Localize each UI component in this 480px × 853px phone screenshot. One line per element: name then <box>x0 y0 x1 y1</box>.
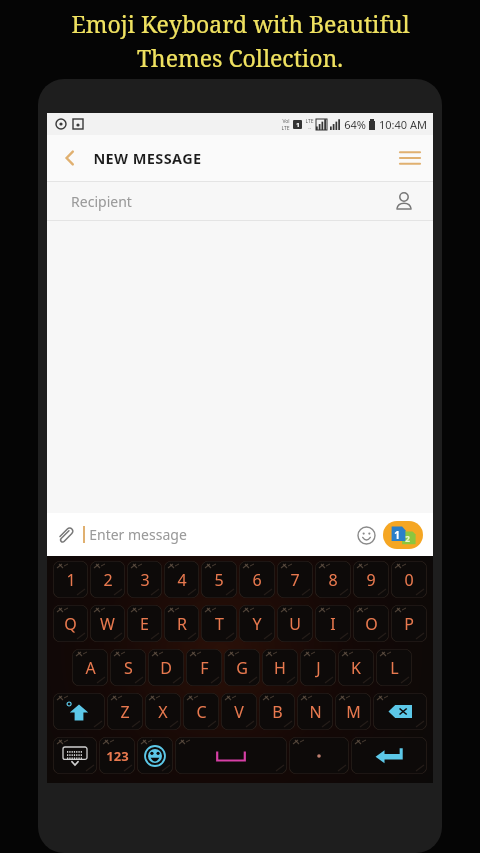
staticText: 2 <box>405 533 410 544</box>
button[interactable]: Period <box>289 737 349 774</box>
button[interactable]: N <box>297 693 333 730</box>
staticText: ·· <box>308 125 311 132</box>
staticText: Enter message <box>89 525 187 544</box>
staticText: I <box>330 613 336 635</box>
button[interactable]: 2 <box>90 561 125 598</box>
staticText: A <box>85 657 96 679</box>
staticText: 123 <box>106 747 129 765</box>
staticText: 1 <box>66 569 76 591</box>
button[interactable]: V <box>221 693 257 730</box>
staticText: J <box>316 657 321 679</box>
button[interactable]: Q <box>53 605 88 642</box>
button[interactable]: Numbers <box>99 737 135 774</box>
staticText: 1 <box>296 121 300 129</box>
button[interactable]: 4 <box>164 561 199 598</box>
staticText: U <box>289 613 301 635</box>
button[interactable]: 9 <box>353 561 389 598</box>
button[interactable]: I <box>315 605 351 642</box>
staticText: D <box>160 657 172 679</box>
button[interactable]: L <box>376 649 412 686</box>
button[interactable]: Space <box>175 737 287 774</box>
button[interactable]: Hide keyboard <box>53 737 97 774</box>
button[interactable]: F <box>186 649 222 686</box>
button[interactable]: Y <box>239 605 275 642</box>
staticText: 0 <box>404 569 414 591</box>
button[interactable]: J <box>300 649 336 686</box>
button[interactable]: Recipient <box>47 181 433 221</box>
staticText: X <box>158 701 168 723</box>
button[interactable]: C <box>183 693 219 730</box>
staticText: LTE <box>281 125 290 132</box>
staticText: K <box>351 657 361 679</box>
button[interactable]: Back <box>47 135 93 181</box>
button[interactable]: 8 <box>315 561 351 598</box>
button[interactable]: Dual SIM <box>383 521 423 549</box>
staticText: LTE <box>305 118 314 125</box>
button[interactable]: 6 <box>239 561 275 598</box>
staticText: 64% <box>344 117 366 132</box>
staticText: 1 <box>394 528 400 542</box>
staticText: 2 <box>103 569 113 591</box>
button[interactable]: W <box>90 605 125 642</box>
staticText: C <box>196 701 207 723</box>
staticText: 6 <box>252 569 262 591</box>
button[interactable]: T <box>201 605 237 642</box>
staticText: Themes Collection. <box>137 42 343 73</box>
button[interactable]: G <box>224 649 260 686</box>
staticText: 7 <box>290 569 300 591</box>
button[interactable]: X <box>145 693 181 730</box>
button[interactable]: 0 <box>391 561 427 598</box>
staticText: E <box>140 613 149 635</box>
staticText: Y <box>252 613 262 635</box>
staticText: Vol <box>282 118 290 125</box>
button[interactable]: P <box>391 605 427 642</box>
button[interactable]: E <box>127 605 162 642</box>
button[interactable]: Emoji <box>351 520 381 550</box>
button[interactable]: D <box>148 649 184 686</box>
staticText: Z <box>120 701 130 723</box>
button[interactable]: K <box>338 649 374 686</box>
staticText: S <box>124 657 133 679</box>
staticText: 4 <box>177 569 187 591</box>
button[interactable]: S <box>110 649 146 686</box>
button[interactable]: M <box>335 693 371 730</box>
staticText: B <box>272 701 283 723</box>
button[interactable]: O <box>353 605 389 642</box>
button[interactable]: Backspace <box>373 693 427 730</box>
staticText: Emoji Keyboard with Beautiful <box>71 8 410 39</box>
button[interactable]: Shift <box>53 693 105 730</box>
button[interactable]: Emoji <box>137 737 173 774</box>
button[interactable]: U <box>277 605 313 642</box>
staticText: 5 <box>214 569 224 591</box>
button[interactable]: H <box>262 649 298 686</box>
staticText: 8 <box>328 569 338 591</box>
button[interactable]: Enter <box>351 737 427 774</box>
staticText: F <box>200 657 209 679</box>
button[interactable]: Z <box>107 693 143 730</box>
staticText: Recipient <box>71 192 132 211</box>
staticText: M <box>346 701 361 723</box>
staticText: 3 <box>140 569 150 591</box>
button[interactable]: Attach <box>47 513 83 556</box>
staticText: L <box>390 657 399 679</box>
staticText: 10:40 AM <box>379 117 427 132</box>
button[interactable]: 1 <box>53 561 88 598</box>
staticText: NEW MESSAGE <box>93 148 202 168</box>
staticText: T <box>215 613 224 635</box>
staticText: P <box>404 613 414 635</box>
button[interactable]: 3 <box>127 561 162 598</box>
button[interactable]: 7 <box>277 561 313 598</box>
staticText: Q <box>64 613 77 635</box>
staticText: 9 <box>366 569 376 591</box>
button[interactable]: 5 <box>201 561 237 598</box>
button[interactable]: R <box>164 605 199 642</box>
staticText: H <box>274 657 286 679</box>
button[interactable]: Contacts <box>391 188 417 214</box>
button[interactable]: Menu <box>387 135 433 181</box>
staticText: G <box>236 657 248 679</box>
staticText: W <box>100 613 115 635</box>
staticText: N <box>309 701 322 723</box>
staticText: O <box>365 613 378 635</box>
button[interactable]: A <box>72 649 108 686</box>
button[interactable]: B <box>259 693 295 730</box>
